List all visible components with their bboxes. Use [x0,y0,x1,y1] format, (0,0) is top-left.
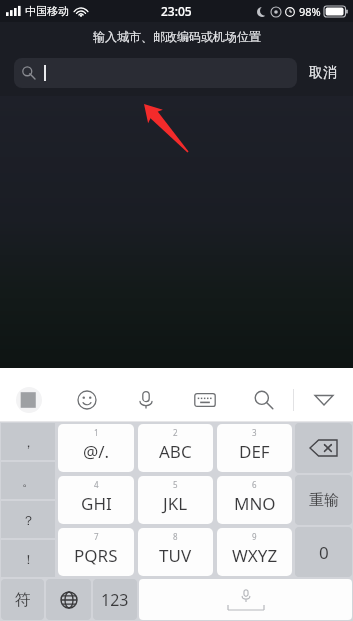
staticText: ！ [22,551,35,567]
staticText: 输入城市、邮政编码或机场位置 [93,29,261,44]
button[interactable]: 9 [217,528,292,576]
staticText: JKL [163,492,188,515]
staticText: TUV [159,544,192,567]
button[interactable]: Keyboard layout [175,378,234,422]
staticText: @/. [83,440,110,463]
button[interactable]: Delete [295,423,352,473]
staticText: 9 [252,531,257,542]
staticText: 中国移动 [25,4,69,18]
button[interactable]: ， [1,423,55,460]
staticText: PQRS [74,544,118,567]
staticText: 2 [173,427,178,438]
staticText: 3 [252,427,257,438]
staticText: ？ [22,512,35,528]
staticText: 。 [22,473,35,489]
staticText: GHI [81,492,112,515]
staticText: 4 [94,479,99,490]
staticText: DEF [239,440,270,463]
button[interactable]: 7 [58,528,134,576]
staticText: MNO [234,492,276,515]
staticText: 8 [173,531,178,542]
staticText: ABC [159,440,192,463]
button[interactable]: 4 [58,476,134,524]
staticText: 重输 [309,491,339,510]
button[interactable] [14,58,297,88]
button[interactable]: Switch language [46,579,91,620]
staticText: 98% [299,4,321,19]
staticText: 123 [101,589,129,611]
button[interactable]: 8 [138,528,213,576]
button[interactable]: ？ [1,501,55,538]
staticText: 1 [94,427,99,438]
button[interactable]: ！ [1,540,55,577]
staticText: 23:05 [161,3,192,19]
staticText: 7 [94,531,99,542]
button[interactable]: Emoji [58,378,116,422]
button[interactable]: 6 [217,476,292,524]
button[interactable]: Voice input [116,378,175,422]
staticText: 6 [252,479,257,490]
button[interactable]: 符 [1,579,44,620]
button[interactable]: 0 [295,527,352,577]
button[interactable]: 取消 [307,60,339,86]
button[interactable]: Space [139,579,352,620]
staticText: 符 [15,590,31,610]
staticText: 0 [319,541,329,564]
button[interactable]: Search [234,378,293,422]
staticText: WXYZ [232,544,278,567]
button[interactable]: 。 [1,462,55,499]
staticText: ， [22,434,35,450]
button[interactable]: 2 [138,424,213,472]
button[interactable]: Hide keyboard [294,378,353,422]
staticText: 取消 [309,64,337,82]
button[interactable]: 1 [58,424,134,472]
staticText: 5 [173,479,178,490]
button[interactable]: 重输 [295,475,352,525]
button[interactable]: 3 [217,424,292,472]
button[interactable]: 123 [93,579,137,620]
button[interactable]: Clipboard [0,378,58,422]
button[interactable]: 5 [138,476,213,524]
